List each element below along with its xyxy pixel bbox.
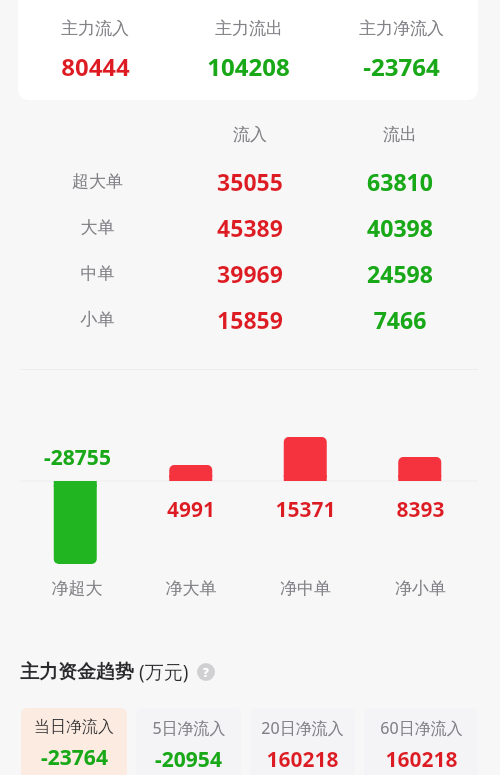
staticText: 净大单 <box>134 578 248 599</box>
button[interactable]: 超大单 <box>0 158 500 204</box>
button[interactable]: 小单 <box>0 296 500 342</box>
staticText: 63810 <box>325 166 475 197</box>
button[interactable]: 60日净流入 <box>364 708 478 775</box>
staticText: 40398 <box>325 212 475 243</box>
button[interactable]: 大单 <box>0 204 500 250</box>
button[interactable]: Help <box>197 663 215 681</box>
staticText: 35055 <box>175 166 325 197</box>
staticText: 净小单 <box>363 578 478 599</box>
staticText: -23764 <box>363 50 440 83</box>
staticText: 主力资金趋势 <box>20 660 134 684</box>
button[interactable]: 主力流入 <box>18 0 478 100</box>
staticText: 流出 <box>325 124 475 145</box>
button[interactable]: 中单 <box>0 250 500 296</box>
staticText: 15859 <box>175 304 325 335</box>
staticText: 20日净流入 <box>261 717 344 739</box>
staticText: ? <box>203 664 209 680</box>
staticText: 5日净流入 <box>152 717 226 739</box>
staticText: 主力流入 <box>61 18 129 39</box>
staticText: 160218 <box>385 745 458 774</box>
staticText: 39969 <box>175 258 325 289</box>
staticText: 15371 <box>248 495 363 524</box>
staticText: 流入 <box>175 124 325 145</box>
staticText: 45389 <box>175 212 325 243</box>
staticText: 中单 <box>20 263 175 284</box>
staticText: 24598 <box>325 258 475 289</box>
staticText: 60日净流入 <box>380 717 463 739</box>
staticText: 80444 <box>61 50 130 83</box>
staticText: 小单 <box>20 309 175 330</box>
staticText: 大单 <box>20 217 175 238</box>
staticText: 8393 <box>363 495 478 524</box>
staticText: 超大单 <box>20 171 175 192</box>
staticText: -28755 <box>20 443 135 472</box>
staticText: 主力净流入 <box>359 18 444 39</box>
staticText: -20954 <box>155 745 222 774</box>
staticText: 净中单 <box>248 578 363 599</box>
button[interactable]: 当日净流入 <box>21 708 127 775</box>
staticText: 当日净流入 <box>34 717 114 737</box>
staticText: -23764 <box>41 743 108 772</box>
staticText: 净超大 <box>20 578 134 599</box>
staticText: 160218 <box>266 745 339 774</box>
staticText: 4991 <box>134 495 248 524</box>
staticText: 主力流出 <box>215 18 283 39</box>
button[interactable]: 20日净流入 <box>250 708 355 775</box>
staticText: 7466 <box>325 304 475 335</box>
button[interactable]: 5日净流入 <box>136 708 241 775</box>
staticText: (万元) <box>139 659 189 685</box>
staticText: 104208 <box>207 50 290 83</box>
